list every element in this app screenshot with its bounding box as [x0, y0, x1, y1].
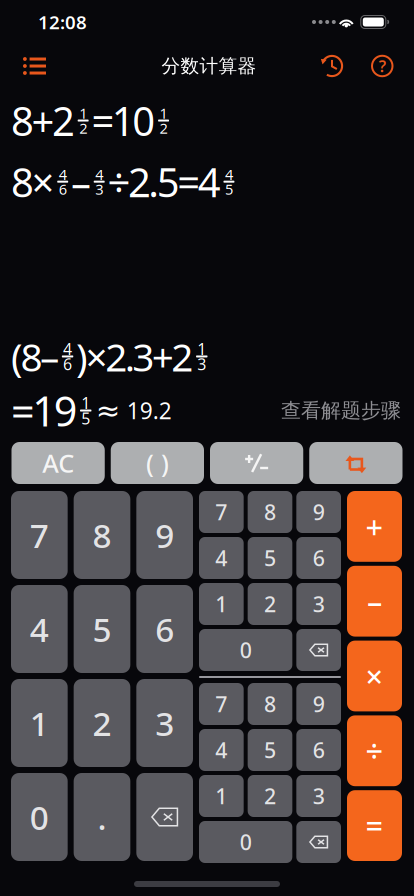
staticText: 4: [215, 544, 227, 572]
button[interactable]: 1: [11, 679, 68, 767]
button[interactable]: ×: [347, 641, 402, 711]
button[interactable]: ÷: [347, 715, 402, 786]
button[interactable]: 5: [248, 537, 292, 579]
staticText: .: [97, 795, 106, 839]
button[interactable]: 9: [136, 491, 193, 579]
staticText: 查看解题步骤: [281, 398, 401, 423]
button[interactable]: History: [320, 44, 343, 88]
staticText: 分数计算器: [161, 54, 256, 77]
staticText: 1: [79, 103, 87, 123]
staticText: 6: [59, 179, 67, 199]
button[interactable]: 3: [136, 679, 193, 767]
button[interactable]: 1: [199, 583, 244, 625]
button[interactable]: 7: [11, 491, 68, 579]
staticText: 4: [225, 164, 233, 184]
button[interactable]: 8: [74, 491, 130, 579]
staticText: 4: [215, 736, 227, 764]
button[interactable]: 7: [199, 683, 244, 725]
staticText: –: [71, 155, 91, 208]
button[interactable]: –: [347, 566, 402, 637]
staticText: (8–: [11, 331, 59, 382]
staticText: 5: [81, 408, 90, 429]
staticText: 8: [264, 498, 276, 526]
staticText: 19.2: [127, 395, 172, 426]
button[interactable]: Delete: [136, 773, 193, 861]
staticText: 1: [81, 392, 90, 413]
staticText: 3: [197, 353, 206, 375]
button[interactable]: 5: [248, 729, 292, 771]
staticText: ÷2.5=4: [107, 155, 221, 208]
button[interactable]: 7: [199, 491, 244, 533]
staticText: 7: [215, 690, 227, 718]
staticText: 3: [313, 590, 325, 618]
staticText: 9: [155, 513, 174, 557]
staticText: 0: [30, 795, 49, 839]
staticText: 6: [313, 544, 325, 572]
button[interactable]: Delete: [296, 821, 341, 863]
button[interactable]: ( ): [111, 442, 204, 484]
button[interactable]: 4: [199, 729, 244, 771]
button[interactable]: 9: [296, 491, 341, 533]
button[interactable]: =: [347, 790, 402, 861]
button[interactable]: 2: [248, 775, 292, 817]
staticText: 4: [30, 607, 49, 651]
staticText: ?: [379, 55, 386, 77]
button[interactable]: Help: [372, 44, 392, 88]
button[interactable]: 6: [296, 729, 341, 771]
staticText: ×: [365, 656, 383, 696]
button[interactable]: 6: [136, 585, 193, 673]
button[interactable]: 4: [11, 585, 68, 673]
staticText: 2: [79, 118, 87, 138]
staticText: 5: [225, 179, 233, 199]
button[interactable]: 8: [248, 683, 292, 725]
button[interactable]: 8: [248, 491, 292, 533]
button[interactable]: Delete: [296, 629, 341, 671]
button[interactable]: AC: [11, 442, 105, 484]
staticText: 8: [92, 513, 111, 557]
button[interactable]: 1: [199, 775, 244, 817]
staticText: 12:08: [38, 10, 87, 34]
button[interactable]: Toggle sign: [210, 442, 303, 484]
button[interactable]: 0: [199, 629, 292, 671]
staticText: 7: [215, 498, 227, 526]
staticText: 0: [240, 828, 252, 856]
button[interactable]: Repeat: [309, 442, 402, 484]
staticText: ≈: [96, 394, 121, 427]
button[interactable]: 2: [248, 583, 292, 625]
button[interactable]: 4: [199, 537, 244, 579]
staticText: 1: [160, 103, 168, 123]
staticText: ÷: [365, 730, 383, 771]
staticText: 3: [313, 782, 325, 810]
staticText: 6: [155, 607, 174, 651]
button[interactable]: 0: [199, 821, 292, 863]
button[interactable]: 5: [74, 585, 130, 673]
staticText: 3: [155, 701, 174, 745]
staticText: 1: [30, 701, 49, 745]
staticText: 7: [30, 513, 49, 557]
button[interactable]: 查看解题步骤: [281, 398, 401, 423]
button[interactable]: 3: [296, 775, 341, 817]
staticText: 4: [63, 338, 72, 359]
button[interactable]: +: [347, 491, 402, 562]
button[interactable]: 2: [74, 679, 130, 767]
staticText: 5: [264, 544, 276, 572]
staticText: ( ): [146, 446, 169, 480]
staticText: 1: [215, 782, 227, 810]
staticText: 2: [160, 118, 168, 138]
staticText: –: [367, 581, 382, 621]
staticText: 4: [95, 164, 103, 184]
staticText: 6: [63, 353, 72, 375]
staticText: =10: [91, 94, 155, 147]
button[interactable]: 0: [11, 773, 68, 861]
staticText: )×2.3+2: [76, 331, 193, 382]
button[interactable]: 3: [296, 583, 341, 625]
staticText: 8: [264, 690, 276, 718]
staticText: 5: [264, 736, 276, 764]
staticText: +: [365, 506, 383, 547]
staticText: 1: [197, 338, 206, 359]
button[interactable]: 9: [296, 683, 341, 725]
button[interactable]: .: [74, 773, 130, 861]
staticText: AC: [42, 446, 74, 480]
button[interactable]: 6: [296, 537, 341, 579]
button[interactable]: Menu: [23, 44, 63, 88]
